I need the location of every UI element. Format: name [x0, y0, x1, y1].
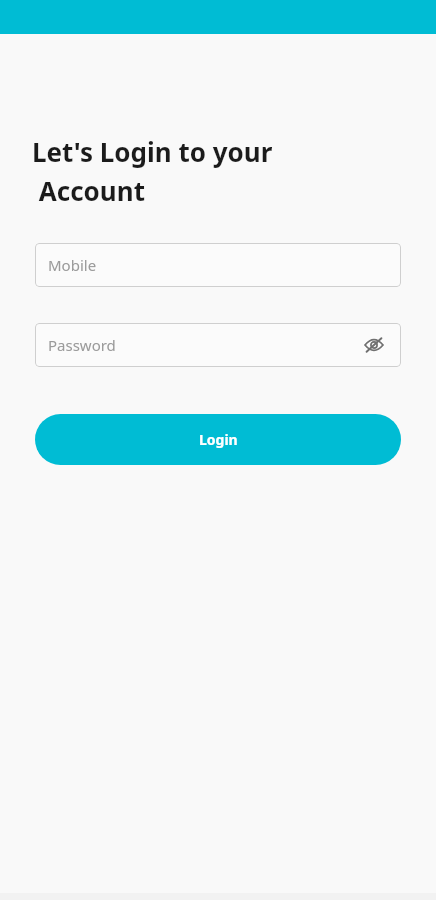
- staticText: Password: [48, 335, 361, 355]
- button[interactable]: Mobile: [35, 243, 401, 287]
- staticText: Let's Login to your Account: [32, 134, 273, 209]
- button[interactable]: Login: [35, 414, 401, 465]
- button[interactable]: Password: [35, 323, 401, 367]
- staticText: Login: [199, 430, 238, 449]
- button[interactable]: Toggle password visibility: [361, 332, 387, 358]
- staticText: Mobile: [48, 255, 387, 275]
